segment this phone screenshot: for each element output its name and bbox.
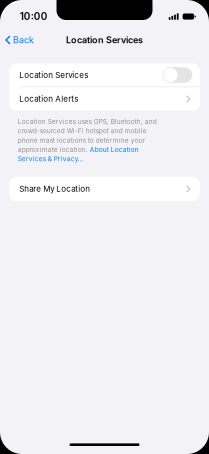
staticText: Back [13,34,34,45]
staticText: 10:00 [20,11,48,22]
staticText: Share My Location [19,184,90,194]
staticText: Location Services uses GPS, Bluetooth, a… [18,118,157,163]
staticText: Location Services [19,70,88,80]
staticText: Location Services [66,34,143,45]
button[interactable]: Share My Location [9,177,200,201]
button[interactable]: Back [0,30,40,49]
button[interactable]: Location Alerts [9,87,200,111]
button[interactable]: Location Services [9,63,200,86]
staticText: Location Alerts [19,94,78,104]
